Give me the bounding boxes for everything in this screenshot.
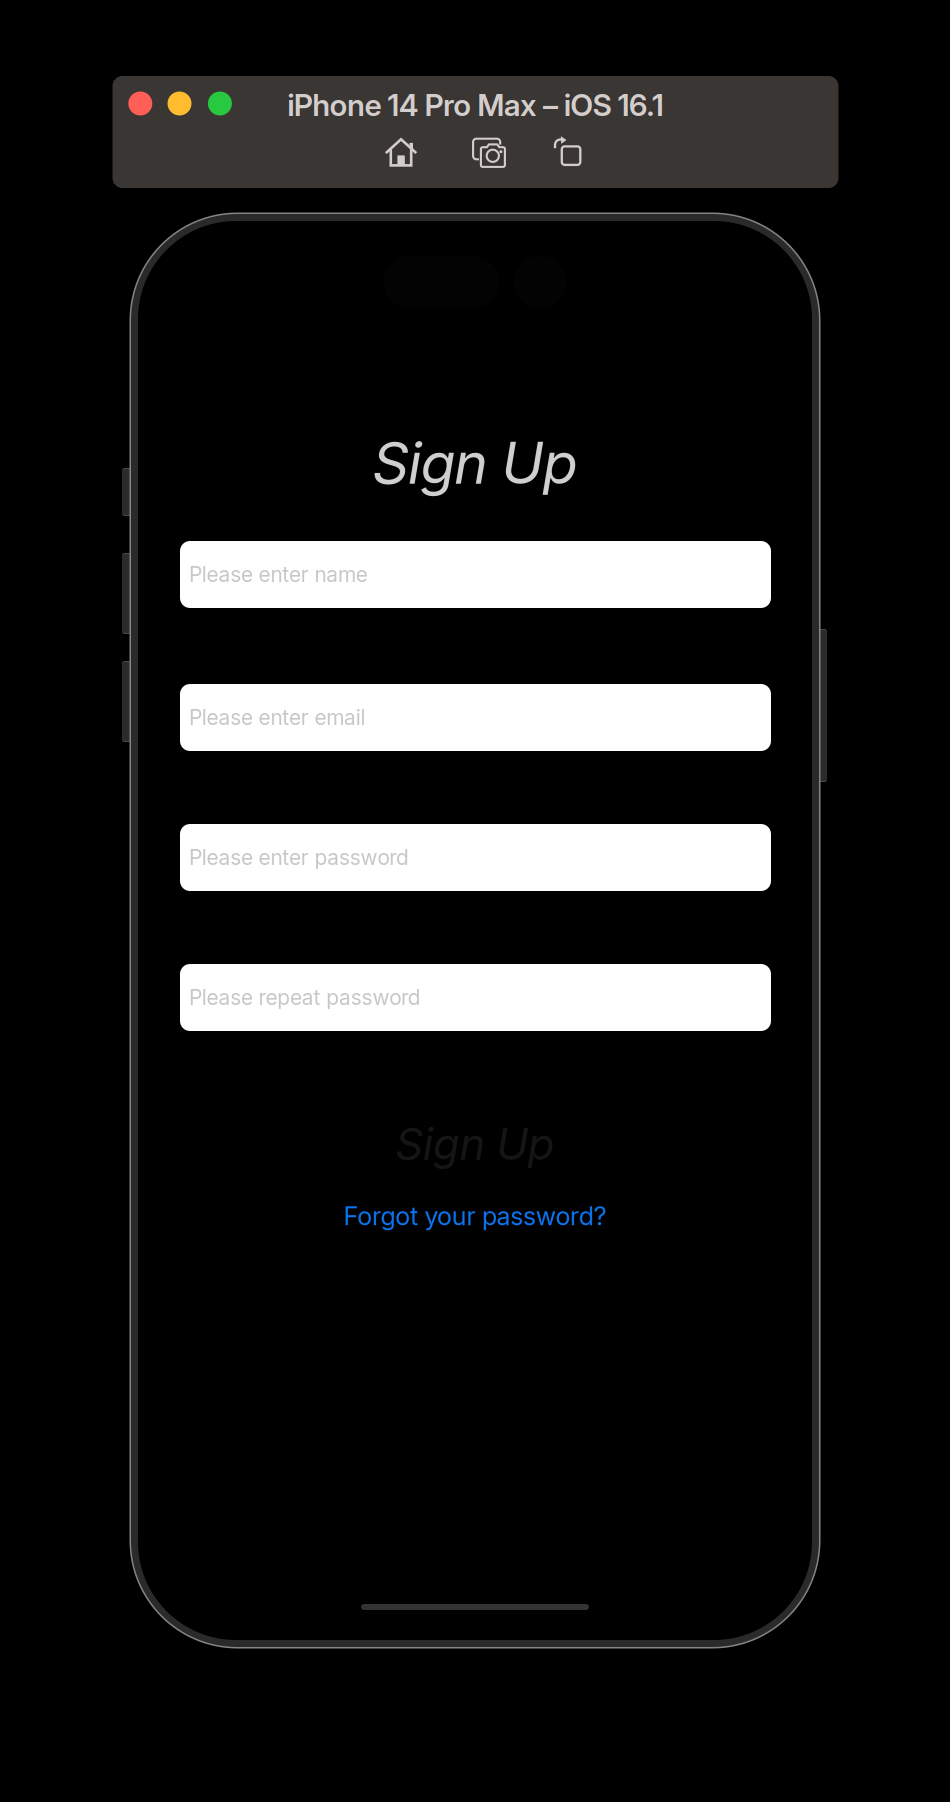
staticText: iPhone 14 Pro Max – iOS 16.1 [287, 87, 664, 123]
button[interactable]: Please enter password [180, 824, 771, 891]
button[interactable]: Forgot your password? [138, 1201, 812, 1231]
staticText: Please enter password [189, 845, 409, 870]
button[interactable]: Close window [128, 91, 152, 115]
button[interactable]: Home [384, 134, 418, 168]
button[interactable]: Zoom window [208, 91, 232, 115]
button[interactable]: Please enter email [180, 684, 771, 751]
button[interactable]: Screenshot [468, 132, 512, 172]
staticText: Please enter email [189, 705, 366, 730]
button[interactable]: Please enter name [180, 541, 771, 608]
staticText: Forgot your password? [343, 1201, 606, 1231]
staticText: Sign Up [395, 1118, 555, 1170]
button[interactable]: Please repeat password [180, 964, 771, 1031]
staticText: Sign Up [372, 428, 578, 498]
button[interactable]: Rotate [548, 130, 592, 174]
button[interactable]: Minimize window [167, 91, 191, 115]
button[interactable]: Sign Up [138, 1121, 812, 1167]
staticText: Please repeat password [189, 985, 421, 1010]
staticText: Please enter name [189, 562, 368, 587]
